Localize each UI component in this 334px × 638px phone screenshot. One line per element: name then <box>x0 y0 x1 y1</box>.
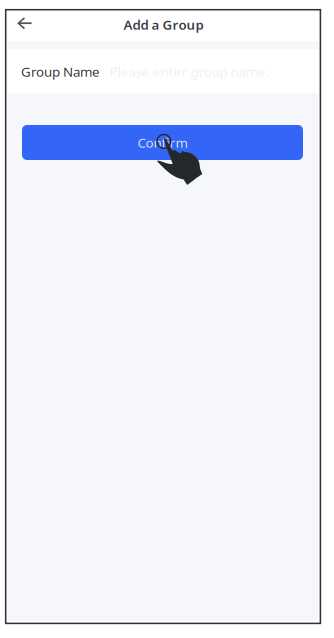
staticText: Group Name <box>21 63 100 80</box>
button[interactable]: Confirm <box>22 125 303 160</box>
staticText: Add a Group <box>123 16 203 33</box>
staticText: Confirm <box>137 134 187 151</box>
button[interactable]: Back <box>6 8 44 39</box>
staticText: Please enter group name. <box>109 63 269 80</box>
